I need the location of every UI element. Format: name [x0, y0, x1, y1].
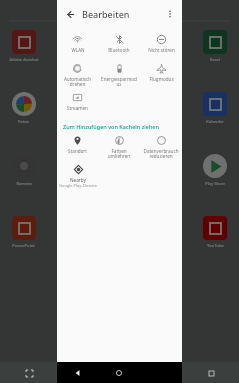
- staticText: Bluetooth: [108, 47, 130, 53]
- button[interactable]: Notizen: [143, 154, 191, 216]
- button[interactable]: Gmail: [47, 92, 95, 154]
- staticText: Fotos: [18, 119, 29, 125]
- button[interactable]: Twitter: [143, 216, 191, 278]
- staticText: PowerPoint: [12, 243, 35, 249]
- button[interactable]: Energiesparmodus: [98, 60, 140, 89]
- button[interactable]: WLAN: [57, 31, 98, 60]
- button[interactable]: Docs: [143, 30, 191, 92]
- staticText: Nearby: [70, 177, 86, 183]
- button[interactable]: PowerPoint: [0, 216, 47, 278]
- button[interactable]: Keep: [143, 92, 191, 154]
- staticText: Bearbeiten: [82, 8, 130, 20]
- button[interactable]: Automatisch drehen: [57, 60, 98, 89]
- button[interactable]: Zurück: [60, 4, 80, 24]
- button[interactable]: Drive: [95, 30, 143, 92]
- staticText: Google Play-Dienste: [59, 183, 97, 188]
- staticText: Excel: [210, 57, 220, 63]
- button[interactable]: Weitere Optionen: [161, 5, 179, 23]
- button[interactable]: Streamen: [57, 89, 98, 118]
- staticText: Kalender: [206, 119, 224, 125]
- button[interactable]: Messenger: [47, 154, 95, 216]
- button[interactable]: YouTube: [191, 216, 239, 278]
- button[interactable]: Bluetooth: [98, 31, 140, 60]
- button[interactable]: Farben umkehren: [98, 132, 140, 161]
- button[interactable]: Datenverbrauch reduzieren: [140, 132, 182, 161]
- button[interactable]: Excel: [191, 30, 239, 92]
- button[interactable]: Vollbild: [22, 366, 36, 380]
- button[interactable]: Übersicht: [204, 366, 218, 380]
- button[interactable]: Standort: [57, 132, 98, 161]
- button[interactable]: Chrome: [47, 30, 95, 92]
- staticText: Zum Hinzufügen von Kacheln ziehen: [63, 123, 159, 130]
- staticText: Energiesparmodus: [100, 76, 138, 88]
- button[interactable]: Play Store: [191, 154, 239, 216]
- button[interactable]: Nicht stören: [140, 31, 182, 60]
- staticText: Flugmodus: [149, 76, 174, 82]
- button[interactable]: Startbildschirm: [98, 362, 140, 383]
- staticText: Play Store: [205, 181, 225, 187]
- staticText: WLAN: [71, 47, 85, 53]
- staticText: YouTube: [207, 243, 224, 249]
- button[interactable]: Fotos: [0, 92, 47, 154]
- button[interactable]: Adobe Acrobat: [0, 30, 47, 92]
- button[interactable]: Maps: [95, 92, 143, 154]
- button[interactable]: Musik: [95, 154, 143, 216]
- staticText: Streamen: [67, 105, 88, 111]
- staticText: Kamera: [16, 181, 32, 187]
- button[interactable]: Nearby: [57, 161, 99, 193]
- staticText: Adobe Acrobat: [9, 57, 39, 63]
- button[interactable]: Kalender: [191, 92, 239, 154]
- staticText: Nicht stören: [148, 47, 175, 53]
- staticText: Farben umkehren: [100, 148, 138, 160]
- button[interactable]: Kamera: [0, 154, 47, 216]
- staticText: Datenverbrauch reduzieren: [142, 148, 180, 160]
- button[interactable]: Flugmodus: [140, 60, 182, 89]
- staticText: Messenger: [60, 181, 82, 187]
- staticText: Automatisch drehen: [59, 76, 96, 88]
- staticText: Standort: [68, 148, 87, 154]
- button[interactable]: Slack: [47, 216, 95, 278]
- button[interactable]: Zurück: [57, 362, 98, 383]
